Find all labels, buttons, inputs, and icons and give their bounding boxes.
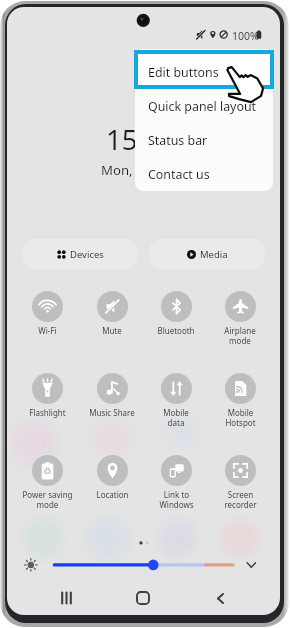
button[interactable]: Back [205,586,235,610]
staticText: Link to Windows [159,489,194,511]
staticText: Mobile Hotspot [225,407,256,429]
button[interactable]: Power saving mode [15,455,80,515]
staticText: Quick panel layout [148,98,257,115]
button[interactable]: Screen recorder [208,455,272,515]
staticText: Edit buttons [148,64,219,81]
button[interactable]: Status bar [135,123,273,157]
button[interactable]: Wi-Fi [15,291,80,373]
staticText: Mon, 21 June [101,161,182,179]
staticText: Flashlight [29,407,66,418]
button[interactable]: Home [128,586,158,610]
button[interactable]: Flashlight [15,373,80,455]
button[interactable] [138,54,270,85]
staticText: Contact us [148,166,210,183]
button[interactable] [7,7,280,615]
button[interactable]: Contact us [135,157,273,191]
button[interactable]: Media [149,239,265,269]
staticText: 15:04 [106,121,177,158]
staticText: 100% [232,29,259,43]
staticText: Wi-Fi [38,325,57,336]
button[interactable]: Edit buttons [135,55,273,89]
staticText: Screen recorder [224,489,257,511]
button[interactable]: Mobile Hotspot [208,373,272,455]
button[interactable]: Quick panel layout [135,89,273,123]
button[interactable]: Airplane mode [208,291,272,373]
button[interactable]: Bluetooth [144,291,208,373]
button[interactable]: Devices [22,239,138,269]
button[interactable]: Recents [51,586,81,610]
staticText: Media [200,248,228,261]
staticText: Status bar [148,132,208,149]
staticText: Airplane mode [224,325,256,347]
staticText: Bluetooth [157,325,195,336]
staticText: Music Share [89,407,135,418]
staticText: Location [96,489,129,500]
staticText: Mobile data [163,407,189,429]
button[interactable]: Mobile data [144,373,208,455]
staticText: Devices [70,248,104,261]
staticText: Mute [102,325,122,336]
button[interactable]: Mute [80,291,144,373]
staticText: Power saving mode [22,489,73,511]
button[interactable]: Music Share [80,373,144,455]
button[interactable]: Location [80,455,144,515]
staticText: Edit buttons [148,64,219,81]
button[interactable]: Link to Windows [144,455,208,515]
